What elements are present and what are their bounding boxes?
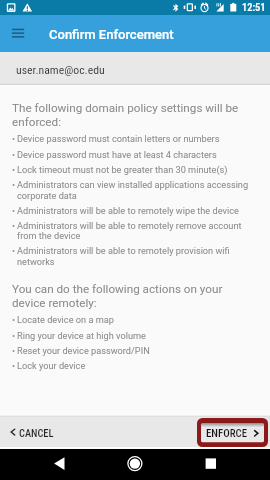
staticText: You can do the following actions on your	[12, 282, 223, 296]
staticText: device remotely:	[12, 296, 97, 310]
staticText: •	[12, 179, 16, 190]
staticText: user.name@oc.edu	[16, 63, 105, 77]
staticText: Administrators can view installed applic…	[17, 179, 249, 190]
staticText: Ring your device at high volume	[17, 330, 146, 341]
staticText: Locate device on a map	[17, 314, 114, 325]
button[interactable]: Open navigation drawer	[0, 15, 36, 52]
staticText: •	[12, 149, 16, 160]
staticText: Device password must have at least 4 cha…	[17, 149, 217, 160]
staticText: Reset your device password/PIN	[17, 345, 150, 356]
staticText: Lock your device	[17, 360, 86, 371]
staticText: Administrators will be able to remotely …	[17, 205, 239, 216]
button[interactable]: user.name@oc.edu	[0, 52, 270, 85]
staticText: enforced:	[12, 115, 61, 129]
staticText: Confirm Enforcement	[49, 27, 174, 42]
staticText: •	[12, 133, 16, 144]
staticText: The following domain policy settings wil…	[12, 101, 239, 115]
staticText: •	[12, 314, 16, 325]
staticText: •	[12, 164, 16, 175]
staticText: Device password must contain letters or …	[17, 133, 220, 144]
staticText: •	[12, 220, 16, 231]
staticText: •	[12, 330, 16, 341]
button[interactable]: ENFORCE	[197, 418, 268, 447]
staticText: •	[12, 345, 16, 356]
staticText: •	[12, 360, 16, 371]
staticText: 12:51	[242, 1, 266, 13]
button[interactable]: CANCEL	[2, 418, 64, 446]
button[interactable]: Home	[115, 449, 155, 480]
staticText: corporate data	[17, 190, 77, 201]
staticText: Lock timeout must not be greater than 30…	[17, 164, 228, 175]
staticText: CANCEL	[19, 427, 54, 439]
staticText: ENFORCE	[206, 427, 247, 440]
staticText: •	[12, 245, 16, 256]
staticText: Administrators will be able to remotely …	[17, 245, 230, 256]
button[interactable]: Back	[40, 449, 80, 480]
staticText: networks	[17, 256, 55, 267]
button[interactable]: Recent apps	[191, 449, 231, 480]
staticText: Administrators will be able to remotely …	[17, 220, 242, 231]
staticText: from the device	[17, 230, 81, 241]
staticText: •	[12, 205, 16, 216]
